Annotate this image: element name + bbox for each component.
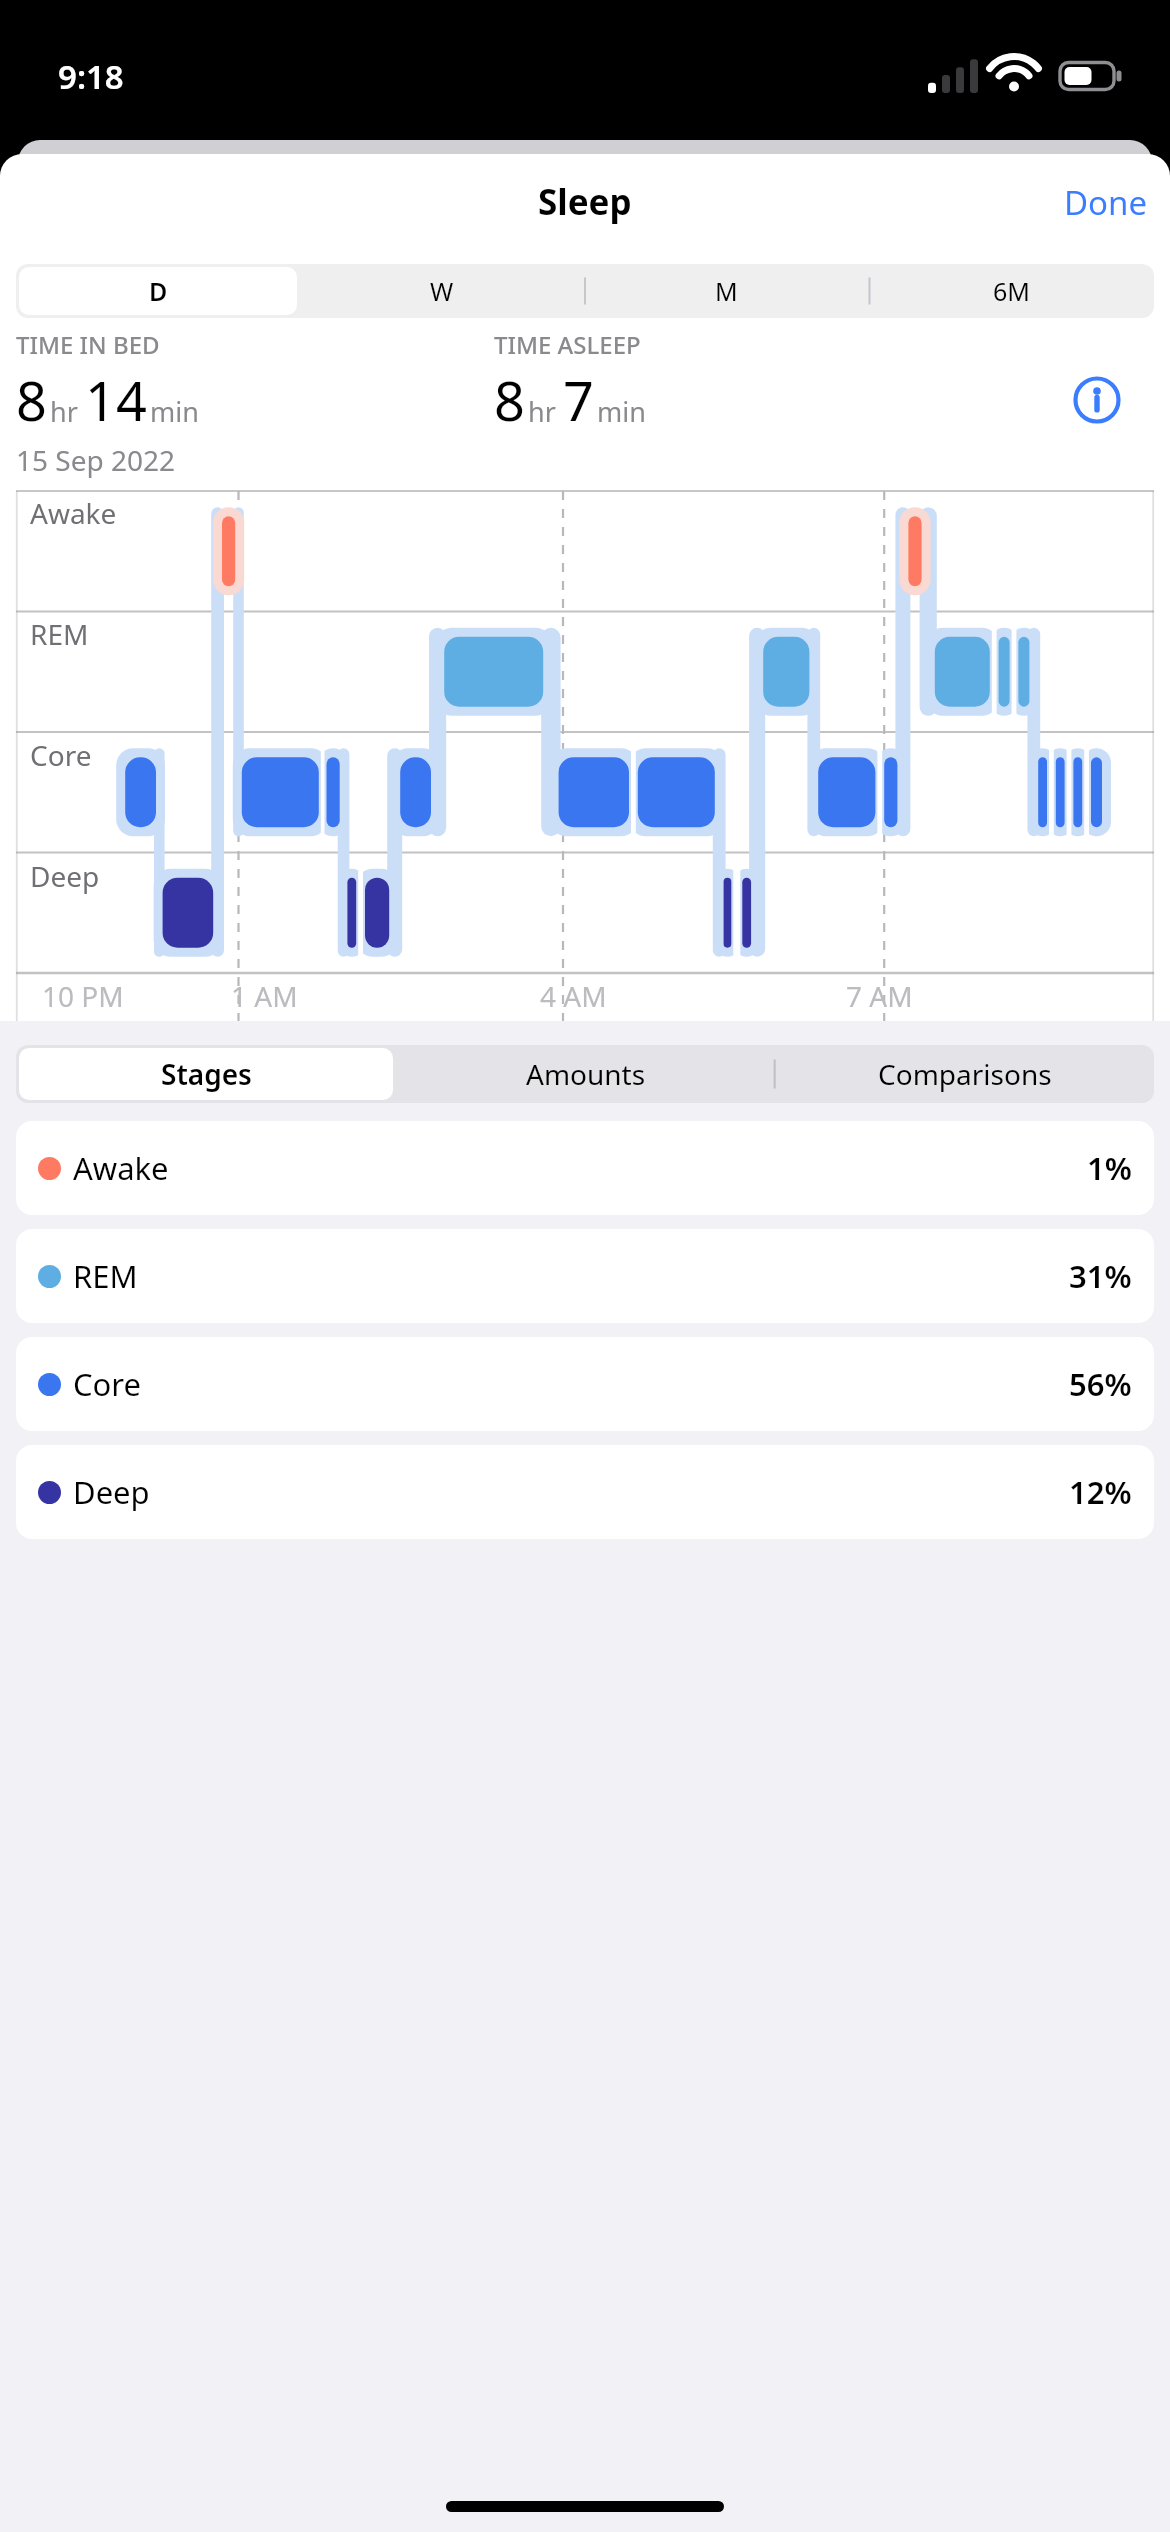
staticText: 56% [1069,1363,1132,1405]
button[interactable]: Awake [16,1121,1154,1215]
staticText: M [715,274,738,308]
staticText: Stages [161,1055,252,1093]
staticText: hr [528,393,556,430]
staticText: Awake [73,1147,169,1189]
button[interactable]: W [303,267,581,315]
staticText: REM [73,1255,138,1297]
button[interactable]: Deep [16,1445,1154,1539]
staticText: Awake [30,494,117,532]
button[interactable]: M [587,267,866,315]
button[interactable]: Done [1042,170,1170,235]
staticText: Core [73,1363,142,1405]
button[interactable]: Stages [19,1048,393,1100]
button[interactable]: Comparisons [778,1048,1151,1100]
staticText: D [149,274,168,308]
staticText: W [430,274,454,308]
staticText: Done [1064,180,1148,225]
staticText: Sleep [538,178,632,226]
staticText: REM [30,615,89,653]
staticText: min [150,393,199,430]
staticText: 12% [1069,1471,1132,1513]
staticText: 10 PM [42,977,124,1015]
button[interactable]: D [19,267,297,315]
staticText: Core [30,736,92,774]
staticText: hr [50,393,78,430]
staticText: min [597,393,646,430]
staticText: 6M [993,274,1030,308]
button[interactable]: REM [16,1229,1154,1323]
staticText: 14 [85,363,147,437]
staticText: Comparisons [878,1055,1052,1093]
staticText: 7 [563,363,594,437]
staticText: 7 AM [846,977,913,1015]
staticText: TIME IN BED [16,328,494,361]
button[interactable]: Core [16,1337,1154,1431]
staticText: 8 [494,363,525,437]
button[interactable]: About sleep data [1040,376,1154,424]
staticText: Amounts [526,1055,646,1093]
staticText: 8 [16,363,47,437]
button[interactable]: Amounts [399,1048,772,1100]
staticText: 4 AM [540,977,607,1015]
staticText: 1% [1087,1147,1132,1189]
staticText: 9:18 [58,54,124,99]
staticText: 15 Sep 2022 [16,441,176,479]
staticText: Deep [73,1471,150,1513]
button[interactable]: 6M [872,267,1151,315]
staticText: 1 AM [231,977,298,1015]
staticText: Deep [30,857,100,895]
staticText: 31% [1069,1255,1132,1297]
staticText: TIME ASLEEP [494,328,1154,361]
